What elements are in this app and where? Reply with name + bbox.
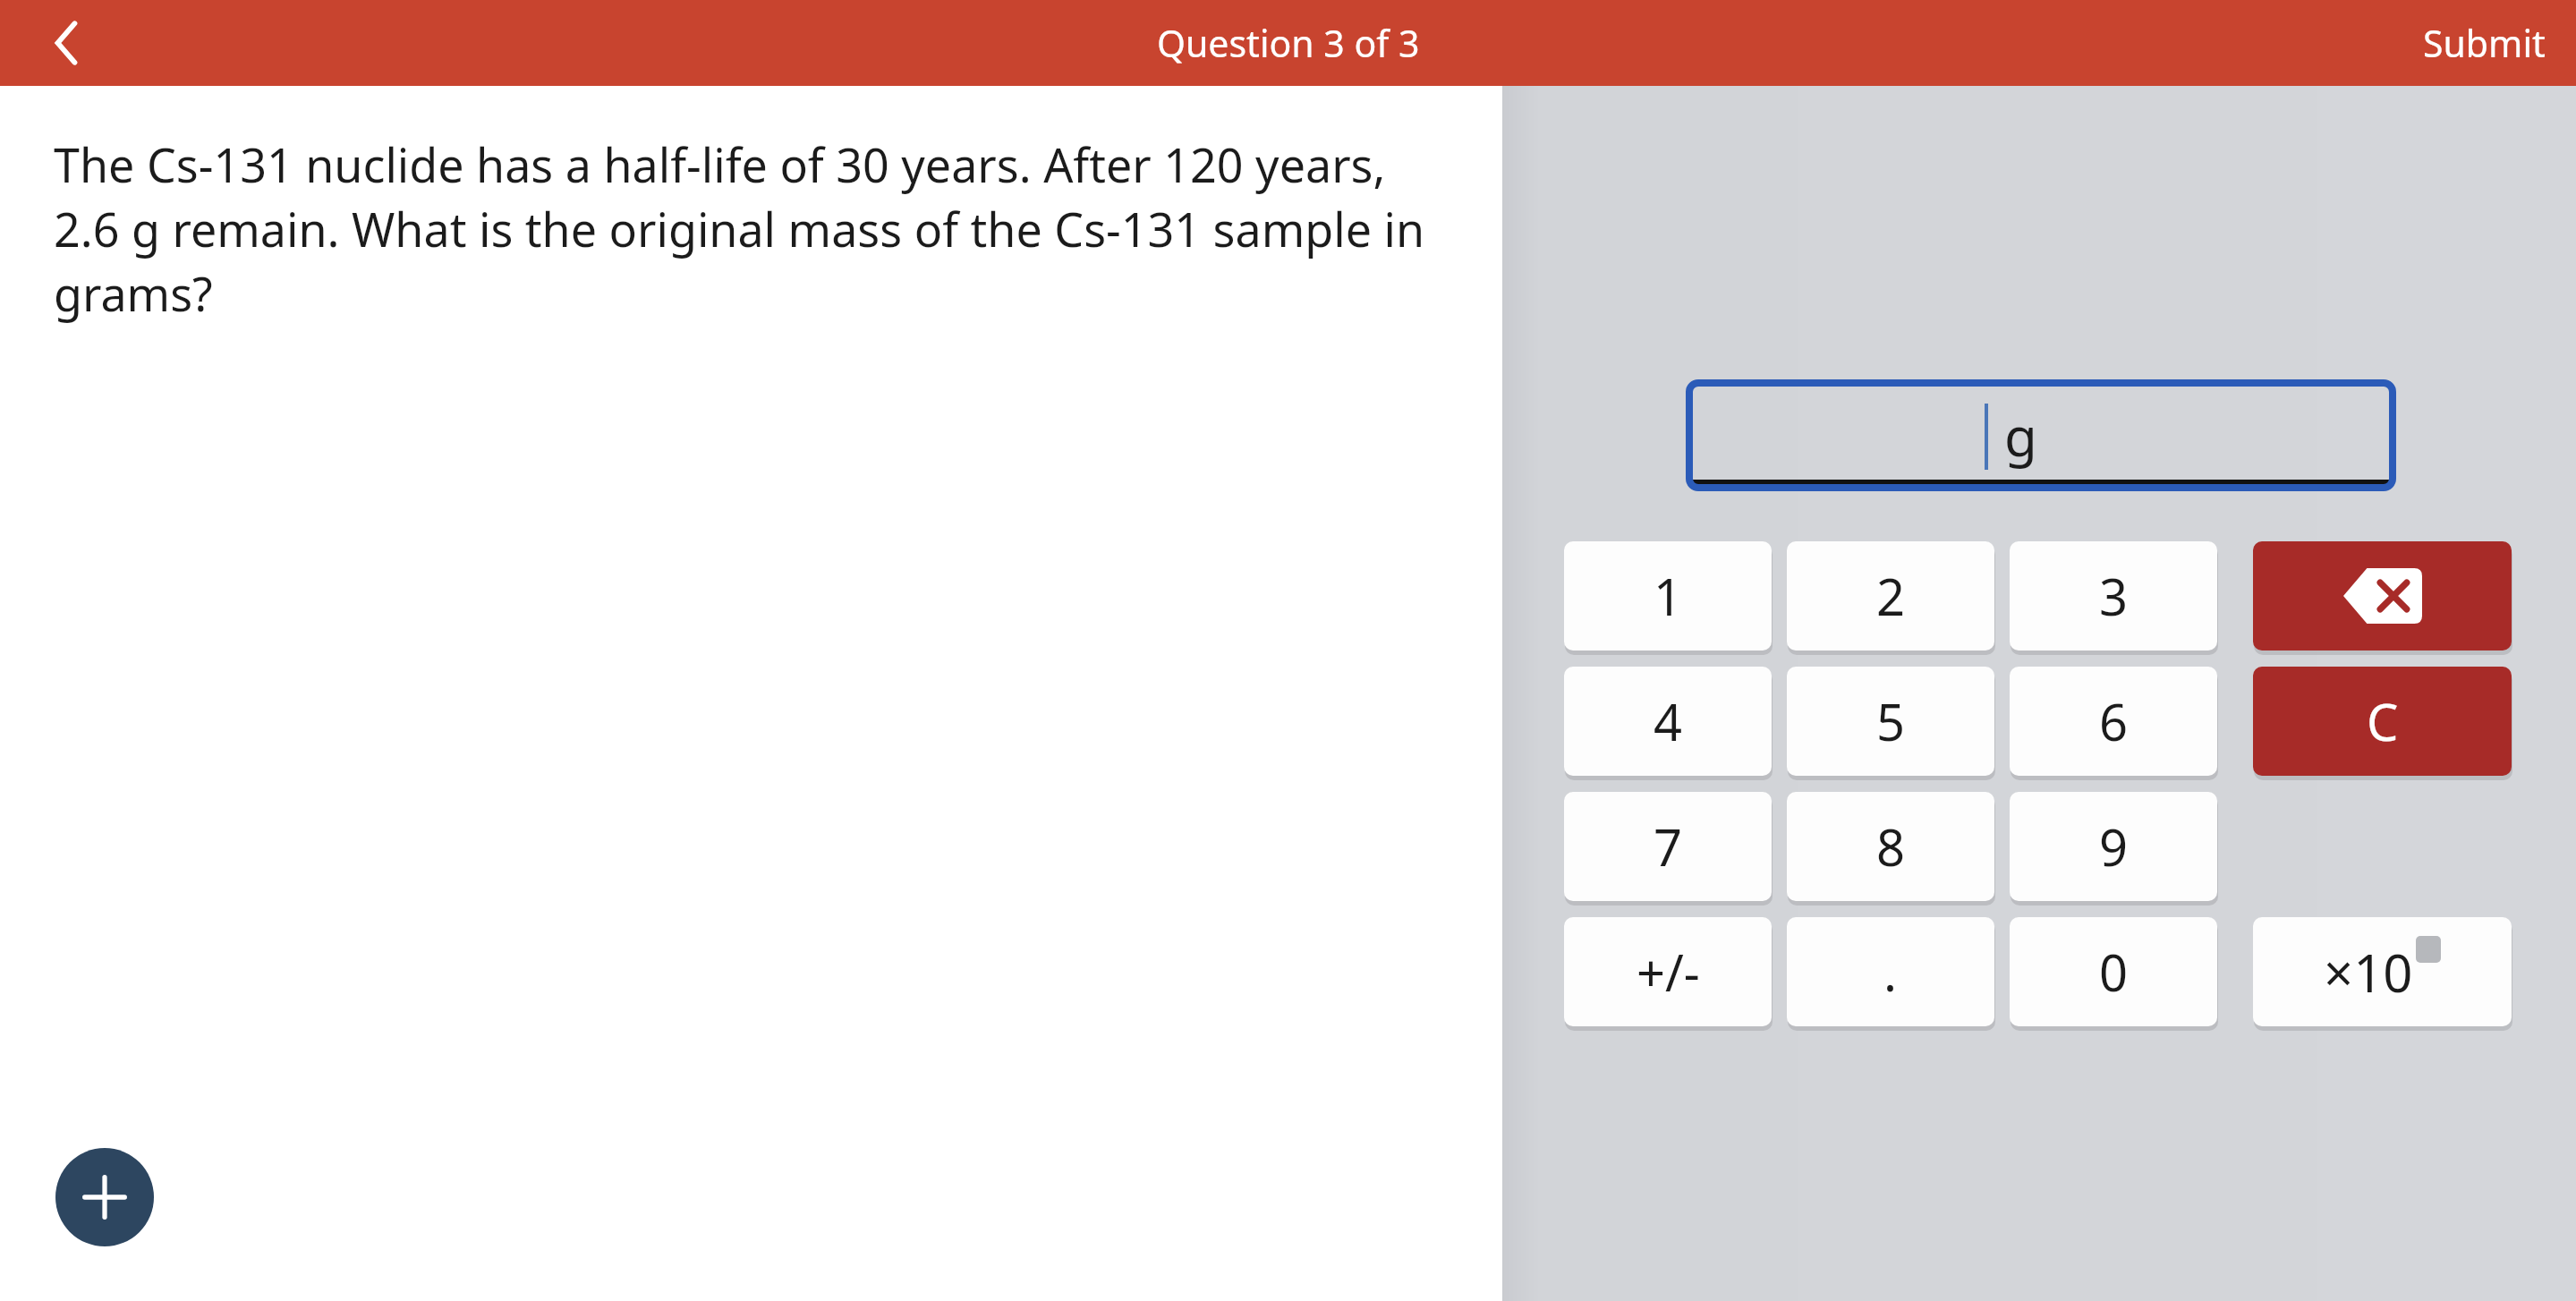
button[interactable]: +/-: [1564, 917, 1772, 1026]
staticText: 9: [2099, 812, 2129, 880]
staticText: 2: [1876, 562, 1906, 630]
button[interactable]: 4: [1564, 667, 1772, 776]
staticText: Submit: [2423, 18, 2546, 68]
button[interactable]: Backspace: [2253, 541, 2512, 650]
staticText: 0: [2099, 938, 2129, 1006]
staticText: Question 3 of 3: [1157, 18, 1420, 68]
staticText: 5: [1876, 687, 1906, 755]
button[interactable]: 8: [1787, 792, 1994, 901]
button[interactable]: 9: [2010, 792, 2217, 901]
staticText: 1: [1654, 562, 1683, 630]
button[interactable]: 6: [2010, 667, 2217, 776]
staticText: 7: [1654, 812, 1683, 880]
button[interactable]: Times ten to the power: [2253, 917, 2512, 1026]
staticText: +/-: [1637, 938, 1700, 1006]
button[interactable]: 0: [2010, 917, 2217, 1026]
button[interactable]: Back: [32, 7, 100, 79]
staticText: The Cs-131 nuclide has a half-life of 30…: [54, 132, 1450, 325]
staticText: g: [2004, 399, 2037, 472]
staticText: 3: [2099, 562, 2129, 630]
button[interactable]: 3: [2010, 541, 2217, 650]
button[interactable]: C: [2253, 667, 2512, 776]
button[interactable]: 7: [1564, 792, 1772, 901]
button[interactable]: g: [1687, 380, 2395, 490]
staticText: C: [2367, 687, 2399, 755]
staticText: .: [1883, 938, 1898, 1006]
staticText: 6: [2099, 687, 2129, 755]
staticText: ×10: [2324, 937, 2413, 1008]
button[interactable]: 2: [1787, 541, 1994, 650]
button[interactable]: Add: [55, 1148, 154, 1246]
button[interactable]: Submit: [2405, 5, 2563, 81]
button[interactable]: .: [1787, 917, 1994, 1026]
button[interactable]: 5: [1787, 667, 1994, 776]
button[interactable]: 1: [1564, 541, 1772, 650]
staticText: 8: [1876, 812, 1906, 880]
staticText: 4: [1654, 687, 1683, 755]
